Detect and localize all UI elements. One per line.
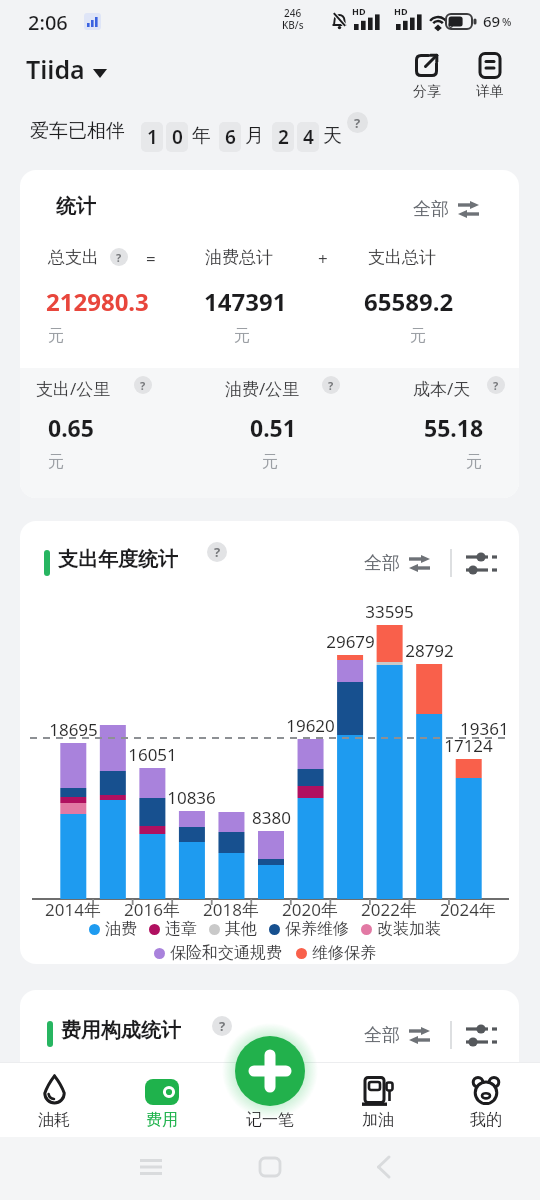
button[interactable]: 全部 (364, 552, 431, 575)
staticText: ? (354, 114, 361, 132)
staticText: 19620 (286, 714, 335, 737)
staticText: 4 (303, 124, 314, 150)
staticText: ? (493, 378, 499, 393)
staticText: 保养维修 (285, 919, 349, 939)
staticText: 65589.2 (364, 285, 454, 318)
staticText: 6 (448, 18, 454, 30)
staticText: 元 (234, 326, 250, 346)
staticText: 2024年 (440, 898, 496, 921)
staticText: 加油 (362, 1110, 394, 1130)
staticText: 全部 (364, 552, 400, 575)
staticText: 爱车已相伴 (30, 119, 125, 143)
staticText: 2 (278, 124, 289, 150)
staticText: 成本/天 (413, 377, 471, 400)
staticText: 1 (147, 124, 158, 150)
staticText: 18695 (49, 718, 98, 741)
staticText: 2014年 (45, 898, 101, 921)
staticText: 33595 (365, 600, 414, 623)
staticText: 支出/公里 (36, 377, 111, 400)
staticText: 69 (483, 11, 501, 31)
button[interactable] (235, 1036, 305, 1106)
button[interactable]: 全部 (413, 198, 480, 221)
button[interactable]: ? (487, 376, 505, 394)
button[interactable] (466, 552, 498, 576)
staticText: = (146, 247, 156, 270)
button[interactable]: ? (347, 112, 368, 133)
button[interactable]: ? (134, 376, 152, 394)
staticText: 元 (48, 452, 64, 472)
staticText: 天 (323, 124, 342, 148)
staticText: 详单 (476, 83, 504, 101)
staticText: 保险和交通规费 (170, 943, 282, 963)
staticText: ? (140, 378, 146, 393)
staticText: 2020年 (282, 898, 338, 921)
button[interactable]: ? (212, 1016, 232, 1036)
staticText: 147391 (204, 285, 287, 318)
staticText: 55.18 (424, 412, 484, 443)
staticText: 0 (172, 124, 183, 150)
staticText: 费用构成统计 (61, 1018, 181, 1043)
staticText: 29679 (326, 630, 375, 653)
staticText: ? (219, 1017, 226, 1035)
button[interactable]: 分享 (403, 50, 451, 106)
staticText: 元 (48, 326, 64, 346)
staticText: 元 (410, 326, 426, 346)
staticText: 油耗 (38, 1110, 70, 1130)
button[interactable] (466, 1024, 498, 1048)
staticText: ? (116, 250, 122, 265)
button[interactable]: 油耗 (12, 1064, 96, 1134)
staticText: ? (214, 543, 221, 561)
staticText: 统计 (56, 194, 96, 219)
staticText: 19361 (460, 717, 509, 740)
button[interactable]: 我的 (444, 1064, 528, 1134)
staticText: 16051 (128, 743, 177, 766)
staticText: 费用 (146, 1110, 178, 1130)
button[interactable]: 全部 (364, 1024, 431, 1047)
staticText: 油费/公里 (225, 377, 300, 400)
staticText: 2018年 (203, 898, 259, 921)
staticText: 2022年 (361, 898, 417, 921)
staticText: 分享 (413, 83, 441, 101)
staticText: 6 (225, 124, 236, 150)
staticText: 0.51 (250, 412, 296, 443)
staticText: 全部 (364, 1024, 400, 1047)
staticText: HD (394, 5, 408, 17)
staticText: 油费总计 (205, 247, 273, 268)
staticText: 维修保养 (312, 943, 376, 963)
staticText: 元 (262, 452, 278, 472)
button[interactable]: 详单 (466, 50, 514, 106)
staticText: 总支出 (48, 247, 99, 268)
button[interactable]: ? (110, 248, 128, 266)
staticText: 年 (192, 124, 211, 148)
staticText: 其他 (225, 919, 257, 939)
staticText: % (502, 14, 512, 29)
staticText: 支出年度统计 (58, 547, 178, 572)
staticText: 支出总计 (368, 247, 436, 268)
staticText: 212980.3 (46, 285, 149, 318)
staticText: 246 (284, 6, 302, 20)
staticText: 全部 (413, 198, 449, 221)
staticText: 17124 (444, 734, 493, 757)
staticText: 10836 (167, 786, 216, 809)
staticText: 28792 (405, 639, 454, 662)
button[interactable]: ? (322, 376, 340, 394)
staticText: 记一笔 (246, 1110, 294, 1130)
staticText: KB/s (282, 18, 304, 32)
staticText: 2:06 (28, 9, 68, 36)
staticText: 月 (245, 124, 264, 148)
staticText: 8380 (252, 806, 291, 829)
staticText: 改装加装 (377, 919, 441, 939)
staticText: 油费 (105, 919, 137, 939)
button[interactable]: ? (207, 542, 227, 562)
staticText: ? (328, 378, 334, 393)
staticText: + (318, 247, 328, 270)
staticText: 元 (466, 452, 482, 472)
staticText: 违章 (165, 919, 197, 939)
staticText: HD (352, 5, 366, 17)
button[interactable]: 加油 (336, 1064, 420, 1134)
staticText: 0.65 (48, 412, 94, 443)
staticText: Tiida (26, 52, 85, 86)
button[interactable]: 费用 (120, 1064, 204, 1134)
staticText: 2016年 (124, 898, 180, 921)
staticText: 我的 (470, 1110, 502, 1130)
